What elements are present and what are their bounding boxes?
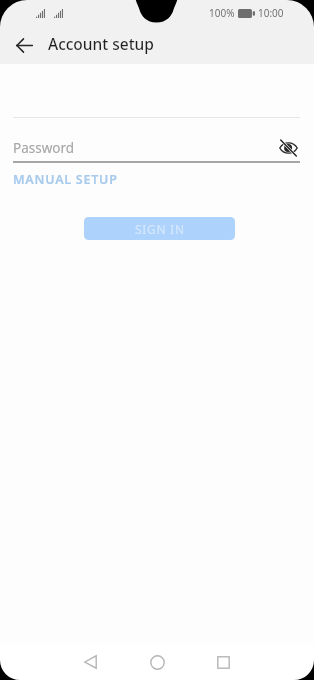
button[interactable]: Home <box>142 647 172 677</box>
button[interactable]: Email address <box>13 64 300 118</box>
button[interactable]: Back <box>6 27 42 63</box>
staticText: MANUAL SETUP <box>13 171 118 188</box>
button[interactable]: Recents <box>208 647 238 677</box>
staticText: Account setup <box>48 33 154 54</box>
button[interactable]: Back <box>75 647 105 677</box>
staticText: Password <box>13 139 75 157</box>
staticText: 100% <box>209 6 235 20</box>
button[interactable]: MANUAL SETUP <box>8 168 123 191</box>
staticText: SIGN IN <box>135 221 185 237</box>
button[interactable]: SIGN IN <box>84 217 235 240</box>
staticText: 10:00 <box>258 6 284 20</box>
button[interactable]: Show password <box>277 136 300 159</box>
button[interactable] <box>13 126 300 163</box>
